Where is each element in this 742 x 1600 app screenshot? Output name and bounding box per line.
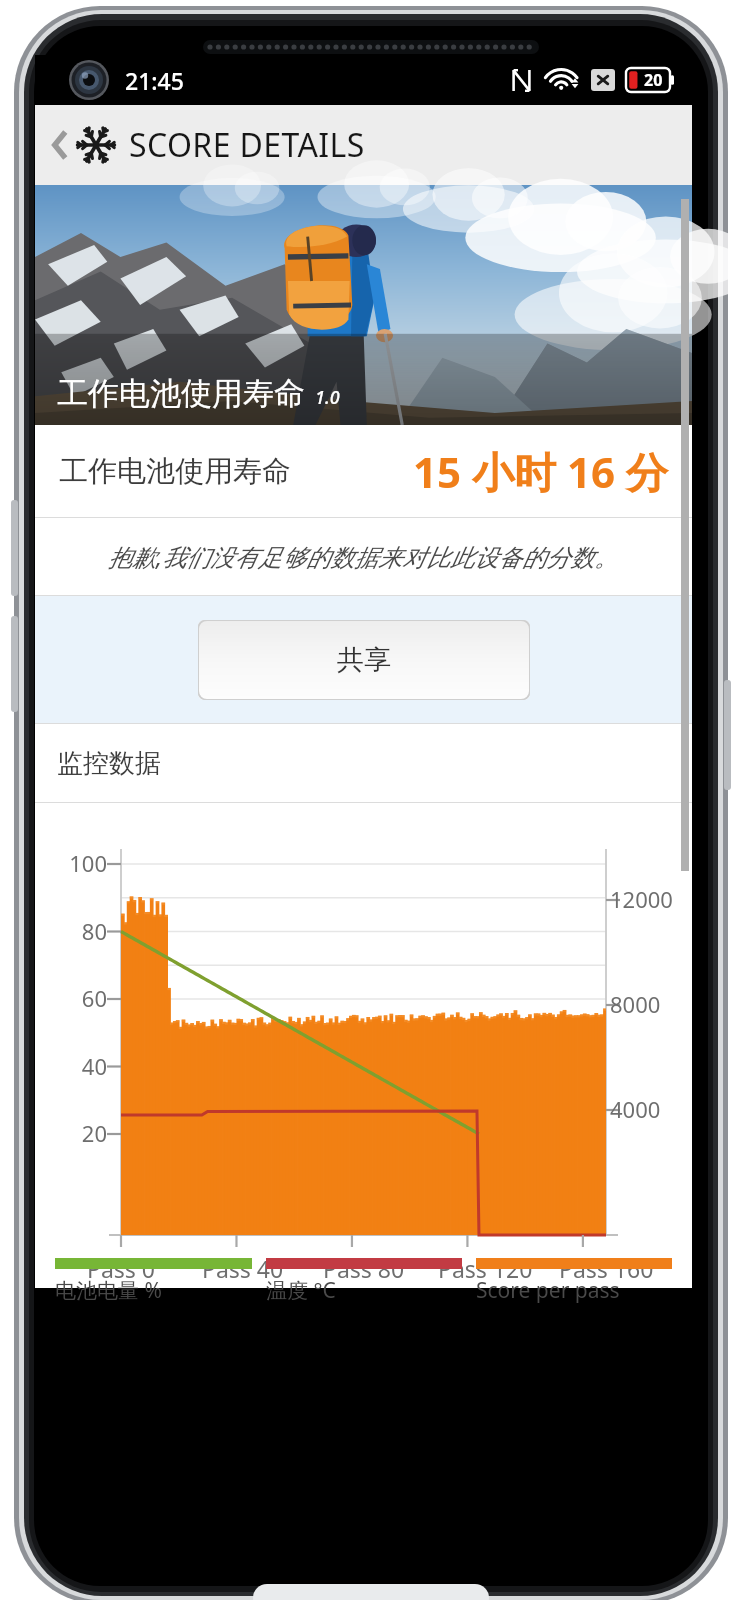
staticText: 100 <box>69 848 107 878</box>
staticText: Pass 160 <box>559 1253 654 1284</box>
staticText: 8000 <box>610 989 661 1019</box>
staticText: 40 <box>81 1051 107 1081</box>
other: Back <box>49 126 71 164</box>
staticText: 电池电量 % <box>55 1276 162 1305</box>
staticText: Score per pass <box>476 1276 620 1305</box>
staticText: 20 <box>644 69 663 91</box>
staticText: Pass 120 <box>438 1253 533 1284</box>
staticText: 12000 <box>610 884 673 914</box>
staticText: 抱歉,我们没有足够的数据来对比此设备的分数。 <box>108 540 619 573</box>
staticText: 工作电池使用寿命 <box>57 374 305 413</box>
button[interactable]: Score per pass <box>476 1258 672 1305</box>
staticText: SCORE DETAILS <box>129 123 365 167</box>
staticText: 1.0 <box>315 385 340 410</box>
staticText: 温度 °C <box>266 1276 336 1305</box>
staticText: 工作电池使用寿命 <box>59 453 291 490</box>
staticText: Pass 0 <box>87 1253 155 1284</box>
button[interactable]: 电池电量 % <box>55 1258 252 1305</box>
staticText: 60 <box>81 983 107 1013</box>
button[interactable]: 共享 <box>198 620 530 700</box>
staticText: 20 <box>81 1118 107 1148</box>
staticText: 15 小时 16 分 <box>413 443 668 500</box>
staticText: 80 <box>81 916 107 946</box>
button[interactable]: 工作电池使用寿命 <box>35 185 692 425</box>
staticText: 共享 <box>337 643 391 677</box>
staticText: Pass 80 <box>323 1253 405 1284</box>
staticText: 21:45 <box>125 65 184 96</box>
staticText: 监控数据 <box>57 747 161 780</box>
button[interactable]: 工作电池使用寿命 <box>35 425 692 517</box>
button[interactable]: Back <box>35 105 381 185</box>
button[interactable]: 温度 °C <box>266 1258 462 1305</box>
staticText: 4000 <box>610 1094 661 1124</box>
staticText: Pass 40 <box>202 1253 284 1284</box>
